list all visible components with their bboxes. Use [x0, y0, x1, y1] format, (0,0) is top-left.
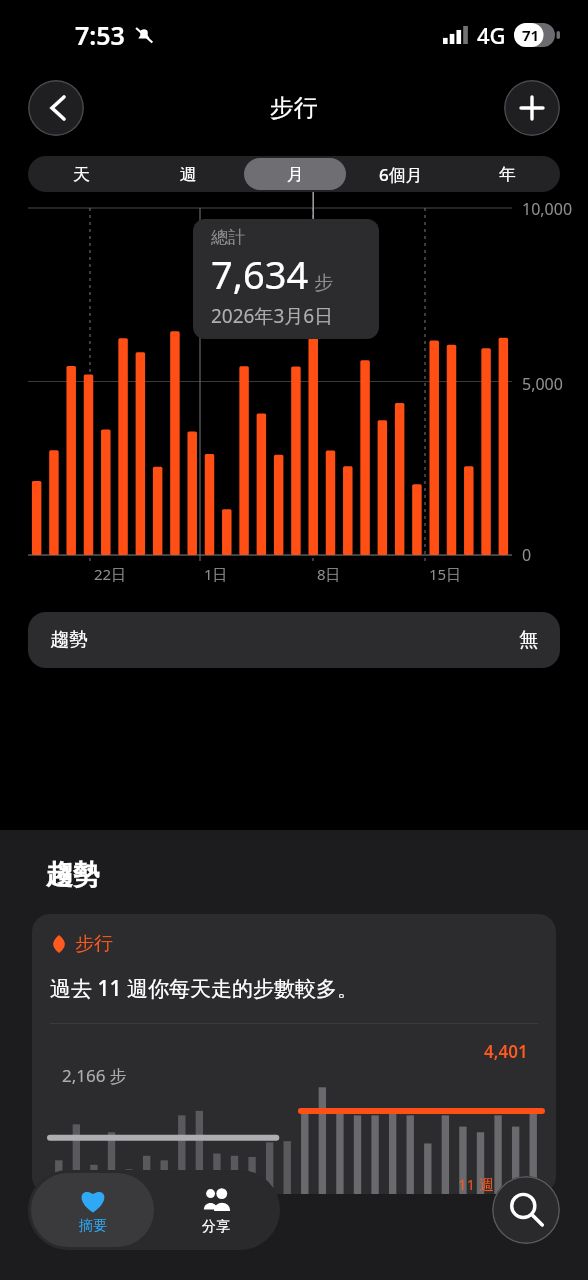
staticText: 7:53	[75, 18, 125, 52]
staticText: 22日	[94, 564, 127, 584]
staticText: 月	[287, 164, 304, 185]
button[interactable]: 年	[456, 158, 558, 190]
staticText: 無	[519, 628, 538, 652]
button[interactable]: 天	[30, 158, 133, 190]
staticText: 趨勢	[50, 628, 88, 652]
button[interactable]: Add	[504, 80, 560, 136]
staticText: 6個月	[379, 163, 423, 186]
button[interactable]: 步行	[32, 914, 556, 1194]
staticText: 1日	[204, 564, 228, 584]
staticText: 步行	[270, 93, 318, 123]
button[interactable]: 分享	[154, 1173, 277, 1247]
staticText: 天	[73, 164, 90, 185]
staticText: 步	[314, 271, 333, 295]
button[interactable]: 週	[137, 158, 240, 190]
staticText: 總計	[211, 227, 245, 248]
button[interactable]: Search	[492, 1176, 560, 1244]
staticText: 過去 11 週你每天走的步數較多。	[50, 974, 358, 1003]
staticText: 摘要	[79, 1217, 107, 1235]
button[interactable]: 趨勢	[28, 612, 560, 668]
staticText: 4G	[477, 20, 506, 50]
staticText: 分享	[202, 1218, 230, 1236]
staticText: 0	[522, 544, 532, 566]
button[interactable]: 摘要	[31, 1173, 154, 1247]
staticText: 7,634	[211, 248, 309, 300]
button[interactable]: 月	[244, 158, 346, 190]
button[interactable]: Back	[28, 80, 84, 136]
button[interactable]: 6個月	[350, 158, 452, 190]
staticText: 11 週	[458, 1174, 495, 1194]
staticText: 8日	[317, 564, 341, 584]
staticText: 週	[180, 164, 197, 185]
staticText: 71	[522, 25, 540, 45]
staticText: 10,000	[522, 198, 573, 220]
staticText: 2026年3月6日	[211, 303, 334, 329]
staticText: 2,166 步	[62, 1064, 127, 1087]
staticText: 步行	[75, 932, 113, 956]
staticText: 5,000	[522, 373, 563, 395]
staticText: 年	[499, 164, 516, 185]
staticText: 15日	[429, 564, 462, 584]
staticText: 4,401	[484, 1040, 528, 1063]
staticText: 趨勢	[46, 858, 100, 892]
